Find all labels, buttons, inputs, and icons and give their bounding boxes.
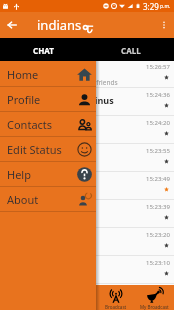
staticText: 3:29: [143, 1, 159, 12]
button[interactable]: Back: [0, 13, 24, 37]
staticText: 15:23:10: [146, 259, 170, 267]
staticText: 15:26:57: [146, 63, 170, 71]
staticText: 15:22:58: [146, 287, 170, 295]
button[interactable]: Home: [0, 62, 96, 87]
staticText: Hi friends: [88, 78, 118, 87]
button[interactable]: 15:22:58: [0, 284, 174, 310]
staticText: indians: [37, 16, 82, 34]
button[interactable]: 15:23:10: [0, 256, 174, 284]
staticText: 15:23:49: [146, 175, 170, 183]
staticText: CHAT: [33, 45, 54, 56]
staticText: CALL: [121, 45, 141, 56]
button[interactable]: Help: [0, 162, 96, 187]
button[interactable]: 15:23:55: [0, 144, 174, 172]
button[interactable]: About: [0, 187, 96, 212]
staticText: minus: [86, 94, 114, 106]
staticText: About: [7, 192, 39, 207]
staticText: p.m.: [160, 3, 171, 10]
staticText: Edit Status: [7, 142, 62, 157]
staticText: 15:24:36: [146, 91, 170, 99]
staticText: 15:24:20: [146, 119, 170, 127]
button[interactable]: 15:24:20: [0, 116, 174, 144]
staticText: Help: [7, 167, 31, 182]
button[interactable]: CALL: [87, 38, 174, 61]
staticText: My Broadcast: [140, 304, 169, 310]
button[interactable]: Edit Status: [0, 137, 96, 162]
button[interactable]: CHAT: [0, 38, 87, 61]
staticText: 15:23:39: [146, 203, 170, 211]
staticText: Broadcast: [105, 304, 127, 310]
staticText: Profile: [7, 92, 41, 107]
button[interactable]: minus: [0, 88, 174, 116]
staticText: Home: [7, 67, 39, 82]
staticText: Contacts: [7, 117, 53, 132]
button[interactable]: Profile: [0, 87, 96, 112]
staticText: 15:23:55: [146, 147, 170, 155]
button[interactable]: 15:23:39: [0, 200, 174, 228]
button[interactable]: 15:23:49: [0, 172, 174, 200]
staticText: 15:23:20: [146, 231, 170, 239]
button[interactable]: Contacts: [0, 112, 96, 137]
button[interactable]: My Broadcast: [135, 285, 174, 310]
button[interactable]: More options: [154, 15, 174, 35]
button[interactable]: Hi friends: [0, 60, 174, 88]
button[interactable]: 15:23:20: [0, 228, 174, 256]
button[interactable]: Broadcast: [96, 285, 135, 310]
